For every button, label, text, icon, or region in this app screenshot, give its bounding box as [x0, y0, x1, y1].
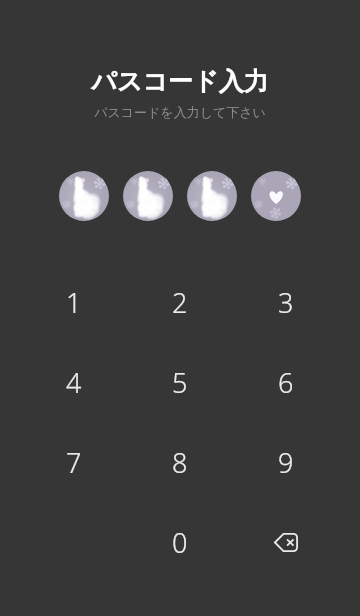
staticText: 2 — [172, 284, 188, 321]
button[interactable]: 3 — [233, 262, 339, 342]
button[interactable]: Delete — [233, 502, 339, 582]
staticText: 5 — [172, 364, 188, 401]
button[interactable]: 6 — [233, 342, 339, 422]
staticText: パスコードを入力して下さい — [94, 104, 266, 120]
button[interactable]: 1 — [21, 262, 127, 342]
staticText: 0 — [172, 524, 188, 561]
button[interactable]: 9 — [233, 422, 339, 502]
button[interactable]: 8 — [127, 422, 233, 502]
staticText: 1 — [66, 284, 82, 321]
staticText: 9 — [278, 444, 294, 481]
button[interactable]: 4 — [21, 342, 127, 422]
staticText: 6 — [278, 364, 294, 401]
button[interactable]: 2 — [127, 262, 233, 342]
staticText: 8 — [172, 444, 188, 481]
staticText: パスコード入力 — [91, 66, 269, 97]
staticText: 7 — [66, 444, 82, 481]
staticText: 4 — [66, 364, 82, 401]
staticText: 3 — [278, 284, 294, 321]
button[interactable]: 7 — [21, 422, 127, 502]
button[interactable]: 5 — [127, 342, 233, 422]
button[interactable]: 0 — [127, 502, 233, 582]
